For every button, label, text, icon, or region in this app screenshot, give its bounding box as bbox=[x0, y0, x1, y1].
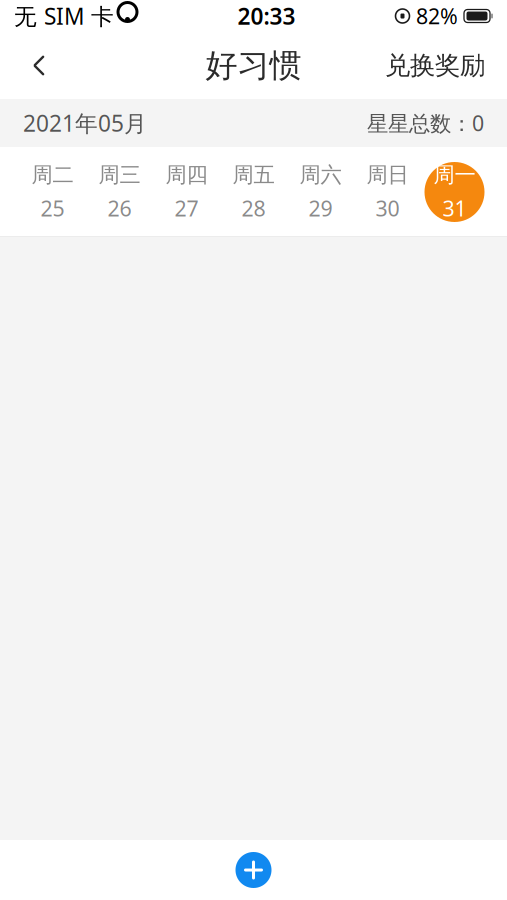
staticText: 27 bbox=[174, 194, 198, 222]
staticText: 周日 bbox=[366, 162, 408, 188]
staticText: 周一 bbox=[433, 162, 475, 188]
button[interactable]: 周六 bbox=[287, 147, 354, 237]
staticText: 兑换奖励 bbox=[385, 50, 485, 81]
button[interactable]: 周四 bbox=[153, 147, 220, 237]
staticText: 好习惯 bbox=[205, 46, 301, 85]
button[interactable]: 周三 bbox=[86, 147, 153, 237]
staticText: 20:33 bbox=[237, 1, 295, 31]
button[interactable]: 添加习惯 bbox=[223, 840, 283, 900]
staticText: 周六 bbox=[299, 162, 341, 188]
staticText: 周二 bbox=[31, 162, 73, 188]
staticText: 29 bbox=[308, 194, 332, 222]
button[interactable]: 周五 bbox=[220, 147, 287, 237]
staticText: 无 SIM 卡 bbox=[14, 1, 114, 31]
staticText: 周四 bbox=[165, 162, 207, 188]
staticText: 30 bbox=[375, 194, 399, 222]
button[interactable]: 周一 bbox=[421, 147, 488, 237]
button[interactable]: 周二 bbox=[19, 147, 86, 237]
staticText: 周五 bbox=[232, 162, 274, 188]
staticText: 31 bbox=[442, 194, 466, 222]
staticText: 星星总数：0 bbox=[367, 109, 484, 137]
button[interactable]: 兑换奖励 bbox=[375, 39, 495, 91]
button[interactable]: 周日 bbox=[354, 147, 421, 237]
staticText bbox=[114, 7, 117, 25]
staticText: 28 bbox=[241, 194, 265, 222]
button[interactable]: 返回 bbox=[12, 39, 66, 91]
staticText: 26 bbox=[107, 194, 131, 222]
staticText: 25 bbox=[40, 194, 64, 222]
staticText: 周三 bbox=[98, 162, 140, 188]
staticText: 82% bbox=[416, 2, 458, 30]
staticText: 2021年05月 bbox=[23, 108, 147, 138]
